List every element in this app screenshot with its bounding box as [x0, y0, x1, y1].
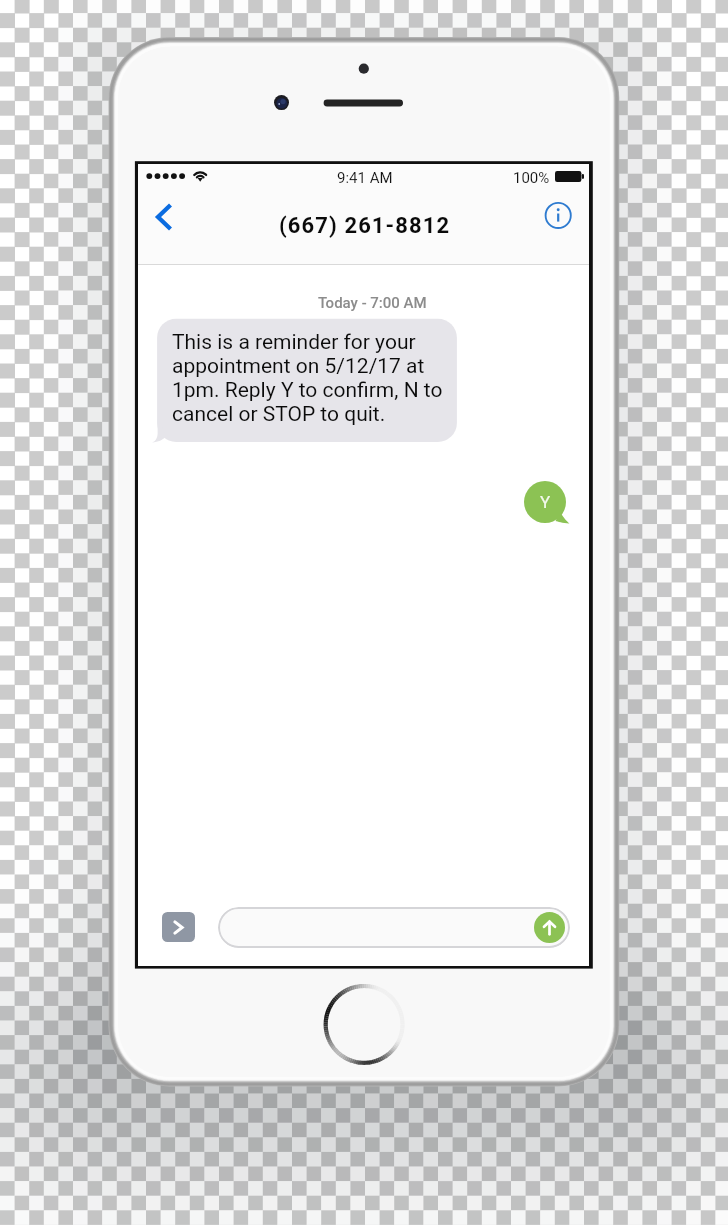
- staticText: Y: [540, 492, 551, 512]
- button[interactable]: This is a reminder for your appointment …: [148, 314, 468, 450]
- staticText: Today - 7:00 AM: [318, 294, 427, 312]
- staticText: This is a reminder for your appointment …: [172, 330, 452, 426]
- button[interactable]: [218, 907, 570, 948]
- staticText: 9:41 AM: [337, 169, 393, 187]
- button[interactable]: Send: [534, 912, 565, 943]
- staticText: (667) 261-8812: [279, 213, 451, 239]
- button[interactable]: Apps: [162, 912, 195, 942]
- button[interactable]: Y: [518, 474, 578, 530]
- button[interactable]: Back: [144, 197, 186, 237]
- staticText: 100%: [513, 169, 550, 187]
- button[interactable]: Info: [541, 198, 575, 232]
